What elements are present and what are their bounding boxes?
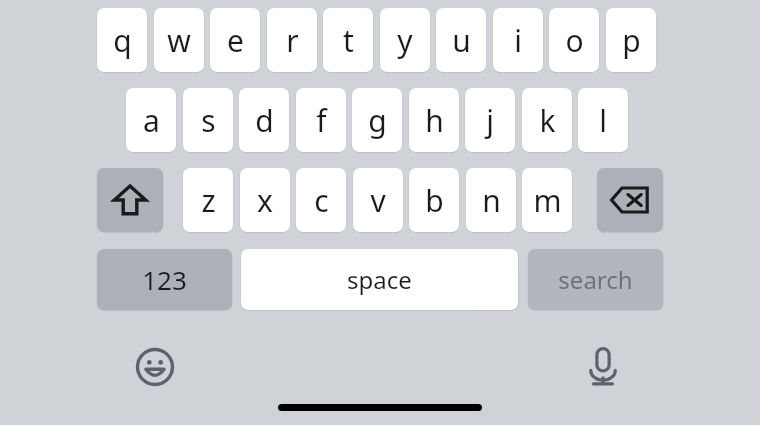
staticText: q [113,20,132,61]
staticText: t [343,20,354,61]
button[interactable]: t [323,8,373,72]
button[interactable]: o [549,8,599,72]
button[interactable]: Shift [97,168,163,232]
button[interactable]: q [97,8,147,72]
button[interactable]: 123 [97,249,232,310]
button[interactable]: space [241,249,518,310]
button[interactable]: n [466,168,516,232]
button[interactable]: b [409,168,459,232]
staticText: x [257,180,273,221]
button[interactable]: x [240,168,290,232]
staticText: o [565,20,584,61]
button[interactable]: v [353,168,403,232]
button[interactable]: g [352,88,402,152]
staticText: p [622,20,641,61]
staticText: 123 [142,262,187,297]
button[interactable]: u [436,8,486,72]
button[interactable]: a [126,88,176,152]
staticText: b [425,180,444,221]
staticText: search [558,263,633,296]
button[interactable]: h [409,88,459,152]
button[interactable]: l [578,88,628,152]
button[interactable]: r [267,8,317,72]
staticText: d [255,100,274,141]
button[interactable]: m [522,168,572,232]
staticText: c [314,180,329,221]
button[interactable]: d [239,88,289,152]
staticText: v [370,180,386,221]
staticText: k [539,100,556,141]
button[interactable]: Backspace [597,168,663,232]
staticText: n [482,180,501,221]
staticText: w [167,20,191,61]
button[interactable]: s [183,88,233,152]
button[interactable]: k [522,88,572,152]
button[interactable]: Voice input [576,340,630,394]
staticText: f [316,100,327,141]
staticText: j [486,100,494,141]
button[interactable]: search [528,249,663,310]
staticText: y [397,20,413,61]
button[interactable]: j [465,88,515,152]
staticText: i [514,20,522,61]
staticText: a [143,100,160,141]
button[interactable]: f [296,88,346,152]
staticText: e [227,20,244,61]
button[interactable]: e [210,8,260,72]
staticText: s [201,100,216,141]
staticText: z [201,180,216,221]
staticText: m [533,180,562,221]
button[interactable]: p [606,8,656,72]
button[interactable]: w [154,8,204,72]
staticText: g [368,100,387,141]
button[interactable]: z [183,168,233,232]
staticText: h [425,100,444,141]
button[interactable]: y [380,8,430,72]
staticText: r [286,20,299,61]
button[interactable]: c [296,168,346,232]
staticText: space [347,263,412,296]
staticText: u [452,20,471,61]
staticText: l [599,100,607,141]
button[interactable]: Emoji keyboard [128,340,182,394]
button[interactable]: i [493,8,543,72]
